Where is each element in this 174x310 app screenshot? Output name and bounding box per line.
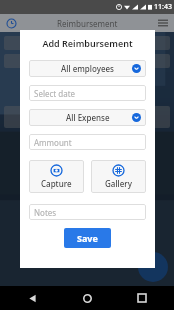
staticText: Gallery [105, 178, 132, 189]
staticText: Select date [34, 88, 76, 99]
button[interactable]: All employees [29, 60, 146, 77]
button[interactable]: Notes [29, 204, 146, 220]
staticText: 11:43 [154, 2, 172, 12]
button[interactable]: History [4, 16, 18, 30]
button[interactable]: Recents [132, 288, 152, 308]
button[interactable]: Menu [156, 16, 170, 30]
staticText: Capture [41, 178, 72, 189]
button[interactable]: Home [77, 288, 97, 308]
button[interactable]: Add [138, 252, 168, 282]
staticText: Add Reimbursement [42, 37, 133, 49]
staticText: All Expense [66, 112, 110, 123]
button[interactable]: Capture [29, 160, 84, 193]
staticText: Save [77, 232, 98, 244]
button[interactable]: All Expense [29, 109, 146, 126]
staticText: Ammount [34, 137, 72, 148]
staticText: Reimbursement [57, 18, 118, 29]
button[interactable]: Select date [29, 85, 146, 101]
staticText: Notes [34, 207, 57, 218]
button[interactable]: Ammount [29, 134, 146, 150]
staticText: All employees [61, 63, 114, 74]
button[interactable]: Back [22, 288, 42, 308]
button[interactable]: Save [64, 228, 111, 248]
button[interactable]: Gallery [91, 160, 146, 193]
